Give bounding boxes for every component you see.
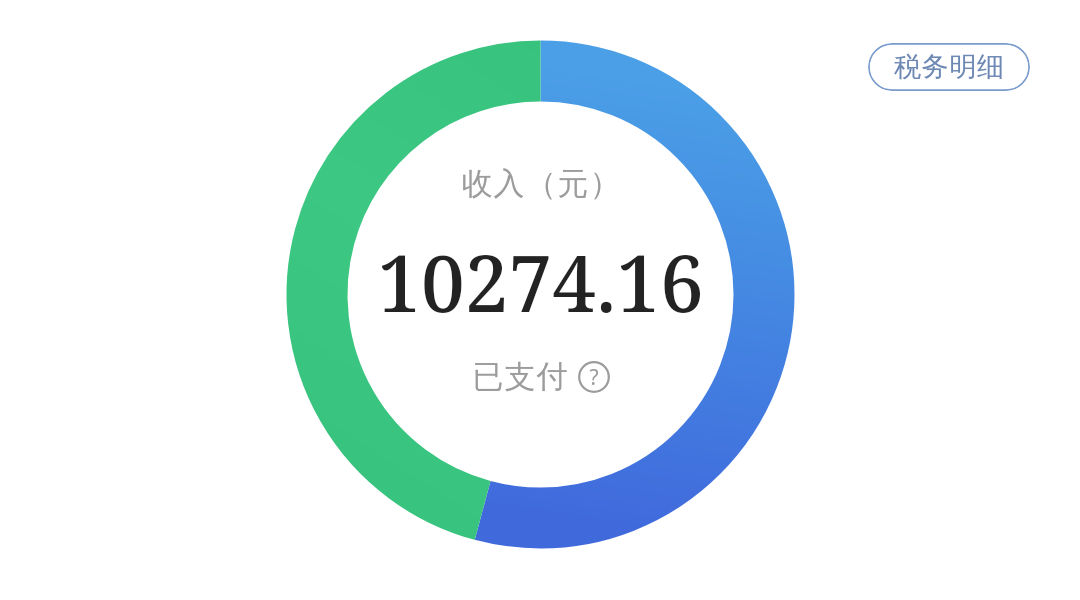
staticText: 税务明细: [894, 50, 1004, 84]
staticText: 10274.16: [377, 229, 704, 335]
staticText: 收入（元）: [461, 164, 621, 203]
staticText: 已支付: [472, 357, 568, 396]
staticText: ?: [589, 363, 599, 392]
button[interactable]: 说明: [578, 361, 610, 393]
button[interactable]: 税务明细: [868, 43, 1030, 91]
